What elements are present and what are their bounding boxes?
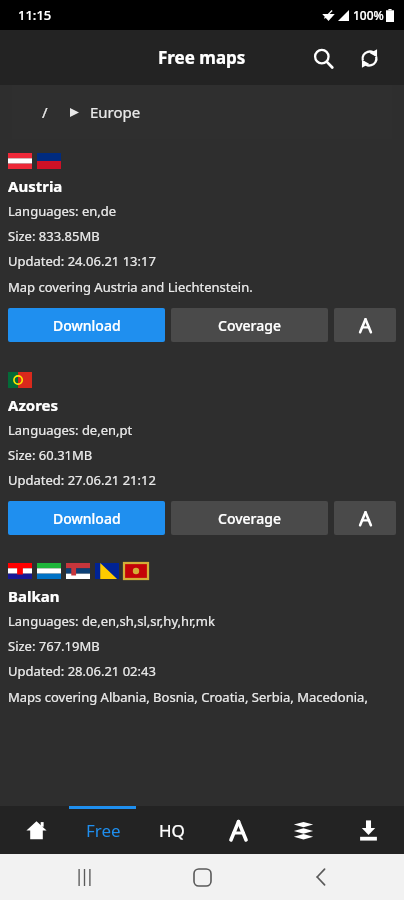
staticText: Free xyxy=(86,819,121,842)
staticText: Languages: en,de xyxy=(8,202,117,220)
staticText: Download xyxy=(53,316,121,335)
button[interactable]: Download xyxy=(8,308,165,342)
button[interactable]: / xyxy=(42,102,48,122)
staticText: Balkan xyxy=(8,586,60,606)
button[interactable]: Open in OsmAnd xyxy=(334,501,396,535)
staticText: Download xyxy=(53,509,121,528)
button[interactable]: Austria xyxy=(0,139,404,342)
staticText: Languages: de,en,sh,sl,sr,hy,hr,mk xyxy=(8,612,215,630)
button[interactable]: Refresh xyxy=(346,35,392,81)
button[interactable]: Layers xyxy=(274,806,332,854)
staticText: 100% xyxy=(353,7,384,23)
button[interactable]: Downloads xyxy=(339,806,397,854)
staticText: Languages: de,en,pt xyxy=(8,421,133,439)
button[interactable]: Open in OsmAnd xyxy=(334,308,396,342)
staticText: Austria xyxy=(8,176,63,196)
staticText: Azores xyxy=(8,395,59,415)
staticText: Updated: 24.06.21 13:17 xyxy=(8,252,156,270)
staticText: Updated: 28.06.21 02:43 xyxy=(8,662,156,680)
button[interactable]: Coverage xyxy=(171,501,328,535)
staticText: Size: 767.19MB xyxy=(8,637,100,655)
staticText: Coverage xyxy=(218,509,281,528)
button[interactable]: Recents xyxy=(49,854,119,900)
staticText: Size: 833.85MB xyxy=(8,227,100,245)
staticText: Size: 60.31MB xyxy=(8,446,93,464)
staticText: Maps covering Albania, Bosnia, Croatia, … xyxy=(8,688,368,706)
staticText: HQ xyxy=(159,819,185,842)
staticText: Updated: 27.06.21 21:12 xyxy=(8,471,156,489)
button[interactable]: Coverage xyxy=(171,308,328,342)
staticText: Free maps xyxy=(158,46,246,69)
staticText: Map covering Austria and Liechtenstein. xyxy=(8,278,253,296)
button[interactable]: Download xyxy=(8,501,165,535)
button[interactable]: Home xyxy=(167,854,237,900)
button[interactable]: Back xyxy=(286,854,356,900)
button[interactable]: Azores xyxy=(0,342,404,535)
button[interactable]: Home xyxy=(7,806,65,854)
button[interactable]: HQ xyxy=(141,806,203,854)
button[interactable]: Routes xyxy=(209,806,267,854)
button[interactable]: Search xyxy=(300,35,346,81)
staticText: 11:15 xyxy=(18,6,52,24)
button[interactable]: Free xyxy=(72,806,134,854)
button[interactable]: Balkan xyxy=(0,535,404,706)
staticText: Coverage xyxy=(218,316,281,335)
button[interactable]: Europe xyxy=(90,102,141,122)
